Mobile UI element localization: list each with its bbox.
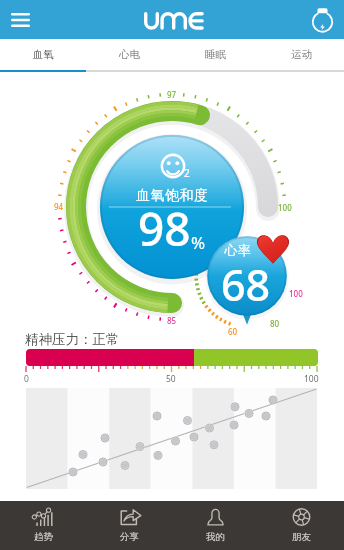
staticText: 趋势 <box>34 531 53 543</box>
staticText: 98 <box>138 197 191 260</box>
button[interactable]: 心电 <box>86 39 172 70</box>
button[interactable]: 分享 <box>86 501 172 550</box>
button[interactable]: Menu <box>5 5 35 35</box>
button[interactable]: 我的 <box>172 501 258 550</box>
staticText: 100 <box>278 202 292 213</box>
staticText: 60 <box>228 326 238 337</box>
staticText: 血氧 <box>33 48 54 61</box>
staticText: 朋友 <box>292 531 311 543</box>
button[interactable]: 朋友 <box>258 501 344 550</box>
staticText: 68 <box>221 255 271 314</box>
button[interactable]: 血氧 <box>0 39 86 70</box>
staticText: 100 <box>289 288 303 299</box>
staticText: 精神压力：正常 <box>25 331 120 348</box>
staticText: 50 <box>166 373 176 385</box>
staticText: 分享 <box>120 531 139 543</box>
button[interactable]: 睡眠 <box>172 39 258 70</box>
staticText: 97 <box>167 89 177 100</box>
button[interactable]: Watch battery 100 percent <box>307 5 337 35</box>
staticText: 我的 <box>206 531 225 543</box>
staticText: 100 <box>304 373 319 385</box>
button[interactable]: 趋势 <box>0 501 86 550</box>
staticText: 2 <box>184 166 190 180</box>
staticText: 运动 <box>291 48 312 61</box>
staticText: 94 <box>54 201 64 212</box>
staticText: 心率 <box>224 242 251 258</box>
staticText: 心电 <box>119 48 140 61</box>
button[interactable]: 运动 <box>258 39 344 70</box>
staticText: 0 <box>24 373 29 385</box>
staticText: 85 <box>167 315 177 326</box>
staticText: % <box>191 231 206 254</box>
staticText: 80 <box>270 318 280 329</box>
staticText: 血氧饱和度 <box>136 187 209 205</box>
staticText: 睡眠 <box>205 48 226 61</box>
